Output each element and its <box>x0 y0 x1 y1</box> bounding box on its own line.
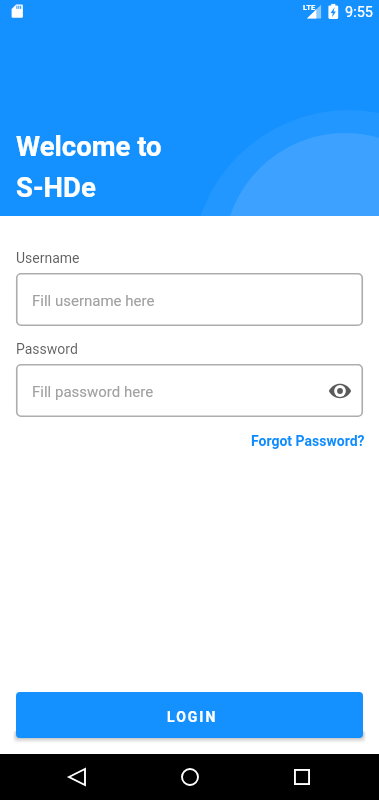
button[interactable]: Home <box>166 754 214 800</box>
button[interactable]: Back <box>53 754 101 800</box>
staticText: Fill password here <box>32 383 154 401</box>
staticText: Welcome to <box>16 130 162 162</box>
button[interactable]: Show password <box>324 375 356 407</box>
button[interactable]: Fill password here <box>16 364 363 417</box>
staticText: LTE <box>303 3 316 12</box>
staticText: LOGIN <box>167 709 218 725</box>
staticText: Username <box>16 250 80 266</box>
staticText: Fill username here <box>32 292 155 310</box>
staticText: 9:55 <box>345 4 373 21</box>
button[interactable]: LOGIN <box>16 692 363 738</box>
staticText: S-HDe <box>16 171 96 203</box>
button[interactable]: Fill username here <box>16 273 363 326</box>
staticText: Password <box>16 341 78 357</box>
button[interactable]: Recents <box>278 754 326 800</box>
button[interactable]: Forgot Password? <box>241 429 379 453</box>
